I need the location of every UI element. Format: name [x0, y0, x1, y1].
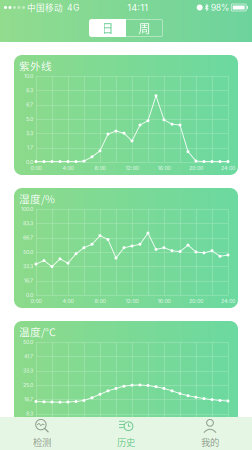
staticText: 83.3 — [23, 220, 33, 227]
staticText: 中国移动 — [25, 1, 63, 14]
staticText: 湿度/% — [19, 191, 55, 206]
staticText: 24:00 — [221, 298, 235, 304]
staticText: 4G — [63, 2, 79, 13]
staticText: 20:00 — [189, 165, 203, 171]
staticText: 16.7 — [24, 396, 33, 403]
staticText: 1.7 — [27, 144, 33, 151]
staticText: 8:00 — [94, 298, 105, 304]
staticText: 14:11 — [127, 2, 148, 13]
staticText: 4:00 — [62, 165, 73, 171]
staticText: 紫外线 — [19, 58, 52, 73]
staticText: 8.3 — [26, 87, 33, 94]
staticText: 10.0 — [24, 73, 33, 79]
button[interactable]: 历史 — [84, 417, 168, 450]
staticText: 24:00 — [221, 165, 235, 171]
button[interactable]: 周 — [126, 19, 163, 37]
staticText: 0:00 — [30, 298, 41, 304]
staticText: 98% — [209, 2, 230, 13]
staticText: 3.3 — [26, 130, 33, 137]
staticText: 5.0 — [26, 116, 33, 122]
staticText: 温度/°C — [19, 324, 56, 339]
staticText: 41.7 — [24, 353, 33, 360]
staticText: 0.0 — [26, 159, 33, 165]
staticText: 8:00 — [94, 165, 105, 171]
staticText: 0:00 — [30, 165, 41, 171]
staticText: 6.7 — [26, 101, 33, 108]
staticText: 25.0 — [23, 382, 33, 388]
staticText: 16.7 — [24, 277, 33, 284]
staticText: 33.3 — [23, 263, 33, 270]
staticText: 16:00 — [157, 298, 170, 304]
button[interactable]: 检测 — [0, 417, 84, 450]
staticText: 4:00 — [62, 298, 73, 304]
staticText: 12:00 — [125, 298, 138, 304]
staticText: 日 — [101, 19, 113, 37]
staticText: 8.3 — [26, 410, 33, 417]
staticText: 20:00 — [189, 298, 203, 304]
button[interactable]: 我的 — [168, 417, 252, 450]
staticText: 100.0 — [21, 206, 33, 212]
staticText: 33.3 — [23, 367, 33, 374]
staticText: 检测 — [33, 435, 51, 449]
staticText: 66.7 — [23, 234, 33, 241]
staticText: 0.0 — [26, 292, 33, 298]
staticText: 我的 — [201, 435, 219, 449]
staticText: 12:00 — [125, 165, 138, 171]
staticText: 历史 — [117, 435, 135, 449]
button[interactable]: 日 — [89, 19, 126, 37]
staticText: 50.0 — [23, 339, 33, 345]
staticText: 周 — [138, 19, 150, 37]
staticText: 16:00 — [157, 165, 170, 171]
staticText: 50.0 — [23, 249, 33, 255]
